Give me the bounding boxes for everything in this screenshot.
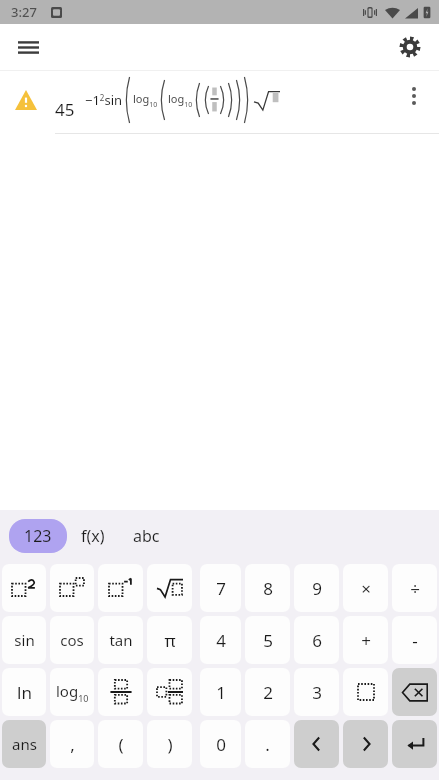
button[interactable]: Menu [10, 29, 46, 65]
button[interactable]: ans [2, 720, 46, 768]
staticText: 1 [216, 681, 226, 704]
button[interactable]: × [343, 564, 388, 612]
staticText: 9 [312, 577, 322, 600]
staticText: π [164, 629, 176, 652]
staticText: ( [118, 733, 124, 756]
button[interactable]: f(x) [67, 519, 119, 553]
button[interactable]: 0 [200, 720, 241, 768]
button[interactable]: 1 [200, 668, 241, 716]
staticText: 123 [24, 525, 52, 547]
staticText: sin [14, 630, 35, 650]
button[interactable]: 5 [245, 616, 290, 664]
staticText: log10 [168, 91, 193, 109]
staticText: log10 [56, 681, 89, 704]
button[interactable]: Log base 10 [50, 668, 94, 716]
staticText: × [361, 577, 371, 600]
button[interactable]: 3 [294, 668, 339, 716]
button[interactable]: tan [98, 616, 143, 664]
staticText: ln [17, 681, 32, 704]
button[interactable]: ÷ [392, 564, 437, 612]
button[interactable]: 6 [294, 616, 339, 664]
staticText: 2 [263, 681, 273, 704]
button[interactable]: Delete [392, 668, 437, 716]
button[interactable]: 123 [9, 519, 67, 553]
button[interactable]: Move left [294, 720, 339, 768]
staticText: 45 [55, 98, 75, 121]
button[interactable]: + [343, 616, 388, 664]
button[interactable]: - [392, 616, 437, 664]
button[interactable]: ( [98, 720, 143, 768]
button[interactable]: Mixed number [147, 668, 192, 716]
staticText: 7 [216, 577, 226, 600]
button[interactable]: Move right [343, 720, 388, 768]
staticText: log10 [133, 91, 158, 109]
button[interactable]: Enter [392, 720, 437, 768]
staticText: ÷ [410, 577, 420, 600]
staticText: 3 [312, 681, 322, 704]
button[interactable]: ) [147, 720, 192, 768]
staticText: abc [133, 525, 160, 547]
button[interactable]: Inverse [98, 564, 143, 612]
button[interactable]: 9 [294, 564, 339, 612]
button[interactable]: Square root [147, 564, 192, 612]
button[interactable]: , [50, 720, 94, 768]
staticText: 8 [263, 577, 273, 600]
staticText: −12sin [85, 91, 123, 109]
button[interactable]: Settings [392, 29, 428, 65]
button[interactable]: Power [50, 564, 94, 612]
button[interactable]: Fraction [98, 668, 143, 716]
button[interactable]: sin [2, 616, 46, 664]
button[interactable]: ln [2, 668, 46, 716]
staticText: , [70, 733, 75, 756]
staticText: 0 [216, 733, 226, 756]
staticText: ) [167, 733, 173, 756]
button[interactable]: cos [50, 616, 94, 664]
button[interactable]: 2 [245, 668, 290, 716]
staticText: cos [60, 630, 84, 650]
staticText: 5 [263, 629, 273, 652]
staticText: tan [109, 630, 133, 650]
button[interactable]: 7 [200, 564, 241, 612]
staticText: 4 [216, 629, 226, 652]
staticText: 6 [312, 629, 322, 652]
staticText: - [412, 629, 418, 652]
button[interactable]: More options [399, 81, 429, 111]
button[interactable]: 8 [245, 564, 290, 612]
staticText: ans [12, 734, 37, 754]
button[interactable]: π [147, 616, 192, 664]
staticText: 3:27 [11, 3, 37, 21]
button[interactable]: abc [119, 519, 174, 553]
button[interactable]: 4 [200, 616, 241, 664]
button[interactable]: . [245, 720, 290, 768]
staticText: + [361, 629, 371, 652]
button[interactable]: Square [2, 564, 46, 612]
button[interactable]: Placeholder [343, 668, 388, 716]
staticText: f(x) [81, 525, 105, 547]
staticText: . [265, 733, 270, 756]
